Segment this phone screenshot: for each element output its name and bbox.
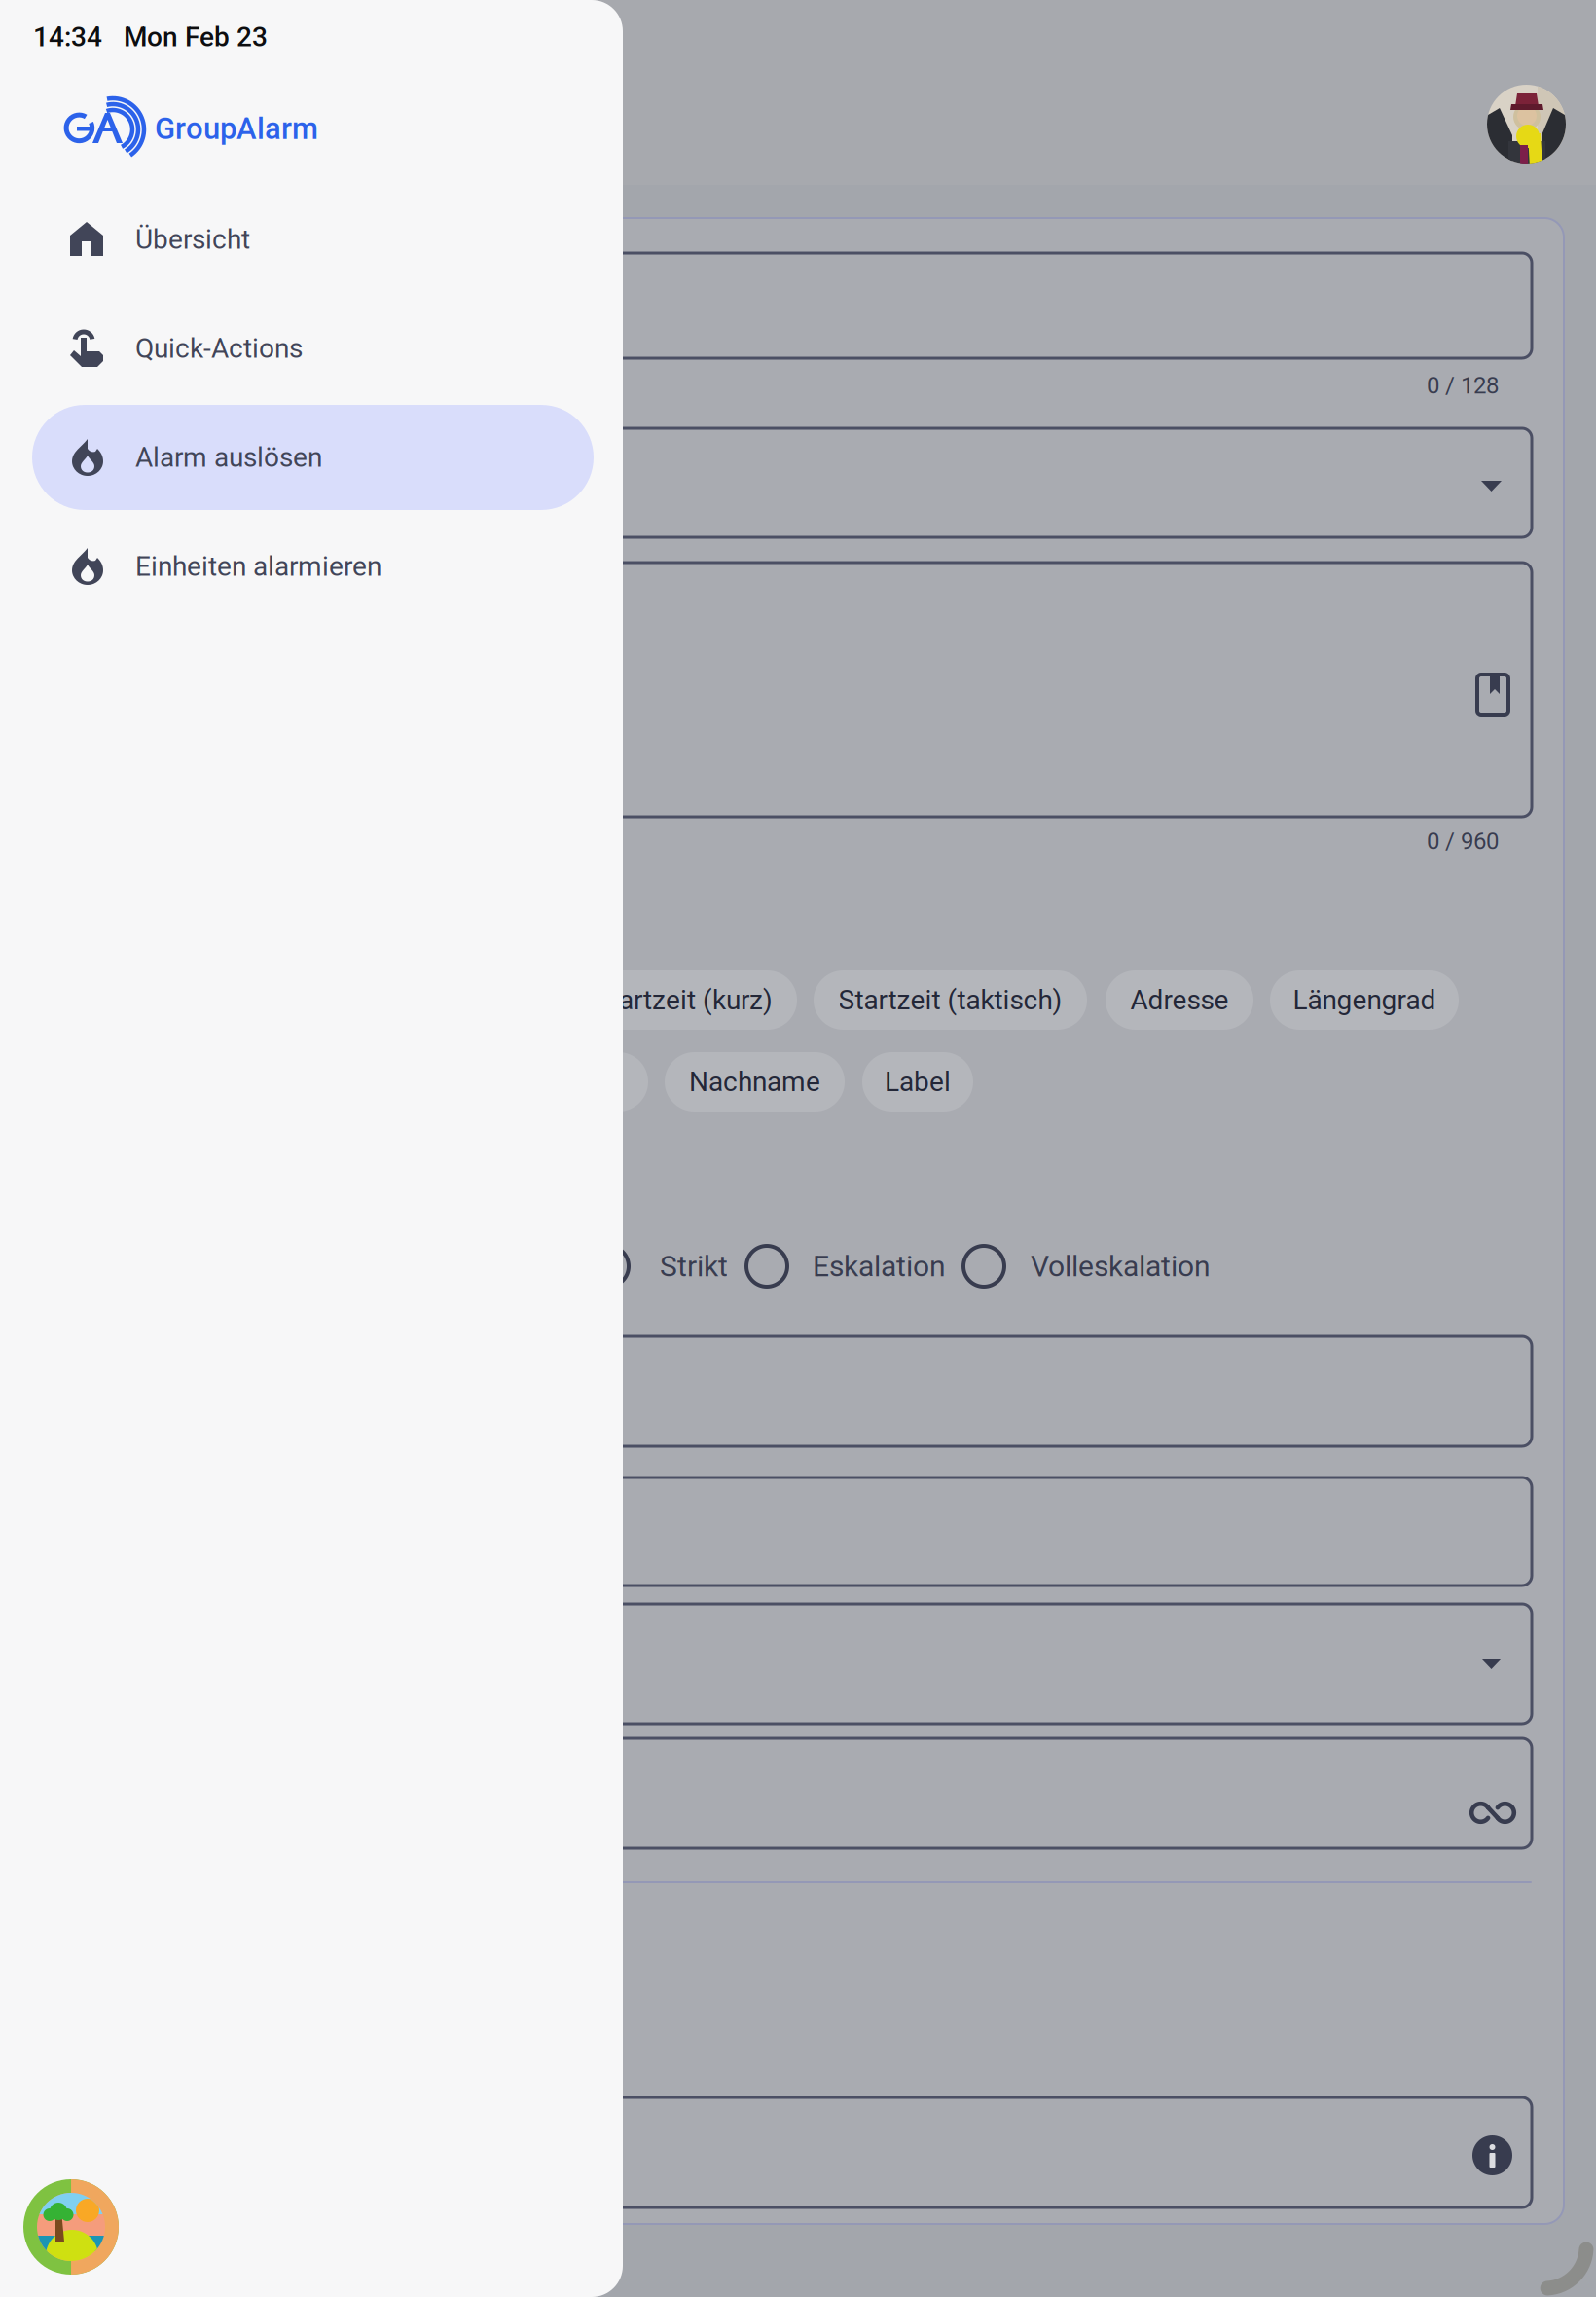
- button[interactable]: Startzeit (taktisch): [814, 970, 1087, 1030]
- button[interactable]: Auswahl öffnen: [1481, 481, 1502, 492]
- button[interactable]: Unbegrenzt: [1469, 1802, 1516, 1824]
- button[interactable]: Auswählen: [963, 1246, 1004, 1287]
- staticText: Einheiten alarmieren: [135, 551, 381, 582]
- button[interactable]: Strikt: [660, 1244, 757, 1289]
- staticText: 14:34: [33, 21, 102, 53]
- button[interactable]: Info: [1472, 2135, 1512, 2175]
- button[interactable]: Auswählen: [746, 1246, 787, 1287]
- button[interactable]: Einheiten alarmieren: [32, 514, 594, 619]
- button[interactable]: Label: [862, 1052, 973, 1112]
- button[interactable]: Adresse: [1106, 970, 1253, 1030]
- staticText: Strikt: [660, 1249, 728, 1283]
- button[interactable]: GroupAlarm: [61, 91, 353, 164]
- button[interactable]: Volleskalation: [1031, 1244, 1245, 1289]
- staticText: Label: [885, 1066, 951, 1098]
- button[interactable]: Auswahl öffnen: [1481, 1659, 1502, 1669]
- button[interactable]: Längengrad: [1270, 970, 1459, 1030]
- button[interactable]: Übersicht: [32, 187, 594, 292]
- staticText: 0 / 128: [1427, 372, 1499, 399]
- button[interactable]: Nachname: [665, 1052, 845, 1112]
- staticText: Längengrad: [1293, 984, 1436, 1016]
- staticText: Übersicht: [135, 223, 250, 255]
- staticText: 0 / 960: [1427, 827, 1499, 855]
- button[interactable]: Startzeit (kurz): [569, 970, 797, 1030]
- staticText: Startzeit (kurz): [594, 984, 773, 1016]
- button[interactable]: Eskalation: [813, 1244, 968, 1289]
- button[interactable]: Profil: [1487, 85, 1566, 164]
- button[interactable]: Auswählen: [588, 1246, 629, 1287]
- staticText: Nachname: [689, 1066, 820, 1098]
- staticText: Adresse: [1130, 984, 1229, 1016]
- staticText: Volleskalation: [1031, 1249, 1211, 1283]
- staticText: Quick-Actions: [135, 332, 303, 364]
- button[interactable]: Organisation: [23, 2179, 119, 2275]
- button[interactable]: Alarm auslösen: [32, 405, 594, 510]
- staticText: Eskalation: [813, 1249, 946, 1283]
- button[interactable]: Quick-Actions: [32, 296, 594, 401]
- staticText: Alarm auslösen: [135, 441, 322, 473]
- button[interactable]: Vorlagen: [1477, 675, 1508, 715]
- staticText: GroupAlarm: [155, 111, 318, 146]
- staticText: Mon Feb 23: [124, 21, 268, 53]
- button[interactable]: Vorname: [483, 1052, 648, 1112]
- staticText: Startzeit (taktisch): [838, 984, 1062, 1016]
